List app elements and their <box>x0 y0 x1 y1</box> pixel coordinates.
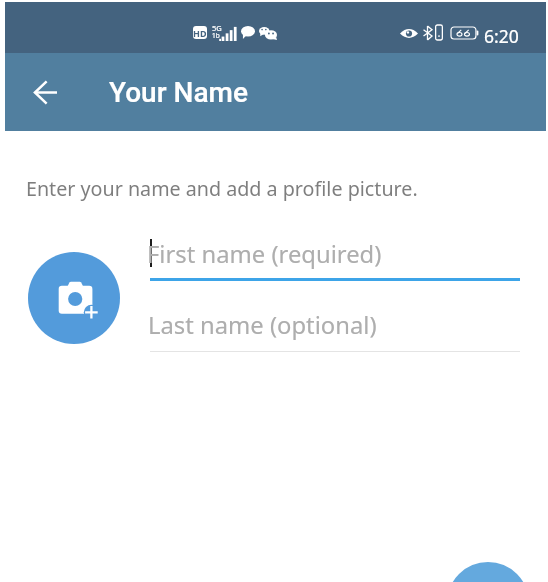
button[interactable]: First name (required) <box>150 237 520 281</box>
button[interactable]: Last name (optional) <box>150 308 520 352</box>
staticText: 5G <box>212 23 222 33</box>
staticText: First name (required) <box>147 238 382 270</box>
button[interactable]: Back <box>21 70 65 114</box>
button[interactable]: Next <box>447 562 529 582</box>
staticText: HD <box>193 27 207 39</box>
staticText: Your Name <box>109 76 248 109</box>
staticText: Enter your name and add a profile pictur… <box>26 175 418 202</box>
staticText: Last name (optional) <box>148 309 377 341</box>
staticText: 6:20 <box>484 24 519 48</box>
button[interactable]: Add profile picture <box>28 252 120 344</box>
staticText: 1b <box>212 31 220 40</box>
